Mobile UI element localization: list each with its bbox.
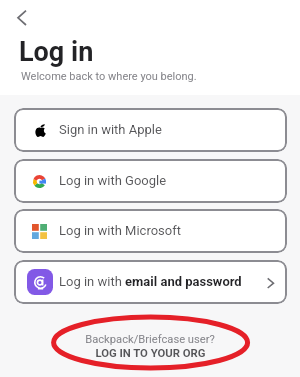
staticText: Log in with Google	[59, 173, 167, 188]
staticText: Log in with Microsoft	[59, 223, 181, 238]
button[interactable]: Log in with Microsoft	[14, 209, 287, 253]
button[interactable]: Sign in with Apple	[14, 108, 287, 152]
staticText: Log in with email and password	[59, 274, 242, 289]
button[interactable]: Log in with email and password	[14, 260, 287, 304]
button[interactable]: Log in with Google	[14, 159, 287, 203]
staticText: Welcome back to where you belong.	[21, 70, 197, 83]
button[interactable]: Backpack/Briefcase user?	[0, 333, 300, 360]
staticText: Backpack/Briefcase user?	[85, 333, 215, 346]
button[interactable]: Back	[10, 6, 34, 30]
staticText: Sign in with Apple	[59, 122, 162, 137]
staticText: LOG IN TO YOUR ORG	[95, 347, 206, 360]
staticText: Log in	[19, 36, 94, 68]
